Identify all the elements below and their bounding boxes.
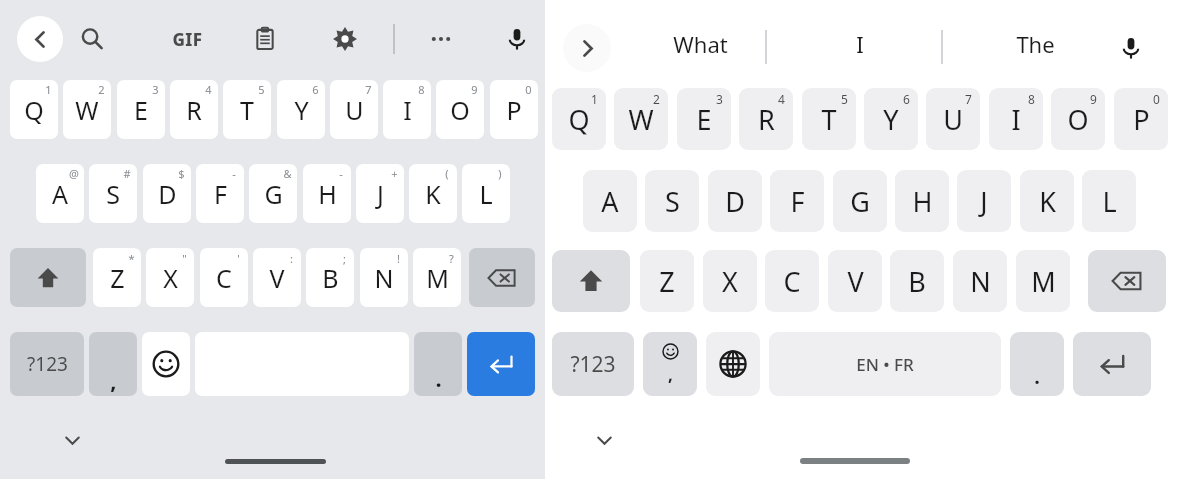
button[interactable]: E (117, 80, 165, 139)
staticText: S (106, 177, 120, 211)
button[interactable]: O (1051, 88, 1105, 150)
button[interactable]: M (413, 248, 461, 307)
button[interactable]: F (770, 170, 824, 232)
staticText: L (1102, 183, 1117, 220)
button[interactable]: . (1010, 332, 1064, 396)
button[interactable]: Backspace (469, 248, 535, 307)
button[interactable]: What (635, 22, 765, 66)
button[interactable]: L (1082, 170, 1136, 232)
button[interactable]: J (356, 164, 404, 223)
button[interactable]: C (765, 250, 819, 312)
button[interactable]: U (926, 88, 980, 150)
staticText: ' (237, 251, 240, 266)
button[interactable]: ?123 (10, 332, 84, 396)
staticText: I (403, 93, 412, 127)
button[interactable]: Hide keyboard (55, 425, 89, 455)
button[interactable]: D (143, 164, 191, 223)
button[interactable]: V (253, 248, 301, 307)
button[interactable]: I (795, 22, 925, 66)
button[interactable]: W (63, 80, 111, 139)
button[interactable]: E (677, 88, 731, 150)
button[interactable]: , (89, 332, 137, 396)
button[interactable]: Z (640, 250, 694, 312)
button[interactable]: A (583, 170, 637, 232)
button[interactable]: J (957, 170, 1011, 232)
button[interactable]: ?123 (552, 332, 634, 396)
button[interactable]: Emoji (142, 332, 190, 396)
button[interactable]: P (490, 80, 538, 139)
button[interactable]: F (196, 164, 244, 223)
staticText: C (216, 261, 232, 295)
button[interactable]: Back (17, 16, 63, 62)
button[interactable]: Enter (1073, 332, 1151, 396)
button[interactable]: B (890, 250, 944, 312)
button[interactable]: X (703, 250, 757, 312)
staticText: K (1039, 183, 1056, 220)
button[interactable]: EN • FR (769, 332, 1001, 396)
button[interactable]: H (303, 164, 351, 223)
button[interactable]: K (409, 164, 457, 223)
staticText: X (722, 263, 738, 300)
button[interactable]: P (1114, 88, 1168, 150)
button[interactable]: Emoji and comma (643, 332, 697, 396)
button[interactable]: Expand toolbar (563, 24, 611, 72)
button[interactable]: Settings (321, 15, 369, 63)
button[interactable]: K (1020, 170, 1074, 232)
staticText: J (980, 183, 988, 220)
button[interactable]: Q (552, 88, 606, 150)
button[interactable]: Shift (552, 250, 630, 312)
button[interactable]: R (739, 88, 793, 150)
button[interactable]: Hide keyboard (587, 425, 621, 455)
button[interactable]: R (170, 80, 218, 139)
button[interactable]: D (708, 170, 762, 232)
button[interactable]: H (895, 170, 949, 232)
staticText: * (128, 251, 135, 266)
button[interactable]: W (614, 88, 668, 150)
button[interactable]: The (970, 22, 1100, 66)
button[interactable]: B (306, 248, 354, 307)
staticText: ; (343, 251, 346, 266)
staticText: + (391, 166, 398, 181)
button[interactable]: Voice input (493, 15, 541, 63)
button[interactable]: I (383, 80, 431, 139)
button[interactable]: L (462, 164, 510, 223)
button[interactable]: N (360, 248, 408, 307)
button[interactable]: Q (10, 80, 58, 139)
button[interactable]: C (200, 248, 248, 307)
button[interactable]: G (833, 170, 887, 232)
button[interactable]: Search (68, 15, 116, 63)
button[interactable]: O (436, 80, 484, 139)
button[interactable]: . (414, 332, 462, 396)
button[interactable]: Y (864, 88, 918, 150)
button[interactable]: X (146, 248, 194, 307)
button[interactable]: T (223, 80, 271, 139)
staticText: Z (659, 263, 675, 300)
button[interactable]: More options (417, 15, 465, 63)
button[interactable]: V (828, 250, 882, 312)
button[interactable]: G (249, 164, 297, 223)
button[interactable]: Enter (467, 332, 535, 396)
staticText: 8 (418, 82, 425, 97)
staticText: V (847, 263, 864, 300)
button[interactable]: T (802, 88, 856, 150)
button[interactable]: M (1016, 250, 1070, 312)
staticText: GIF (172, 28, 203, 51)
button[interactable]: Voice input (1107, 24, 1155, 72)
button[interactable]: I (989, 88, 1043, 150)
button[interactable]: Shift (10, 248, 86, 307)
button[interactable]: Z (93, 248, 141, 307)
staticText: : (290, 251, 293, 266)
staticText: - (339, 166, 343, 181)
button[interactable]: S (645, 170, 699, 232)
button[interactable]: N (953, 250, 1007, 312)
button[interactable]: Clipboard (241, 15, 289, 63)
button[interactable]: Y (277, 80, 325, 139)
button[interactable]: GIF (160, 14, 214, 64)
button[interactable]: Backspace (1088, 250, 1166, 312)
button[interactable]: S (89, 164, 137, 223)
button[interactable]: Change language (706, 332, 760, 396)
button[interactable]: A (36, 164, 84, 223)
staticText: T (240, 93, 254, 127)
button[interactable]: U (330, 80, 378, 139)
